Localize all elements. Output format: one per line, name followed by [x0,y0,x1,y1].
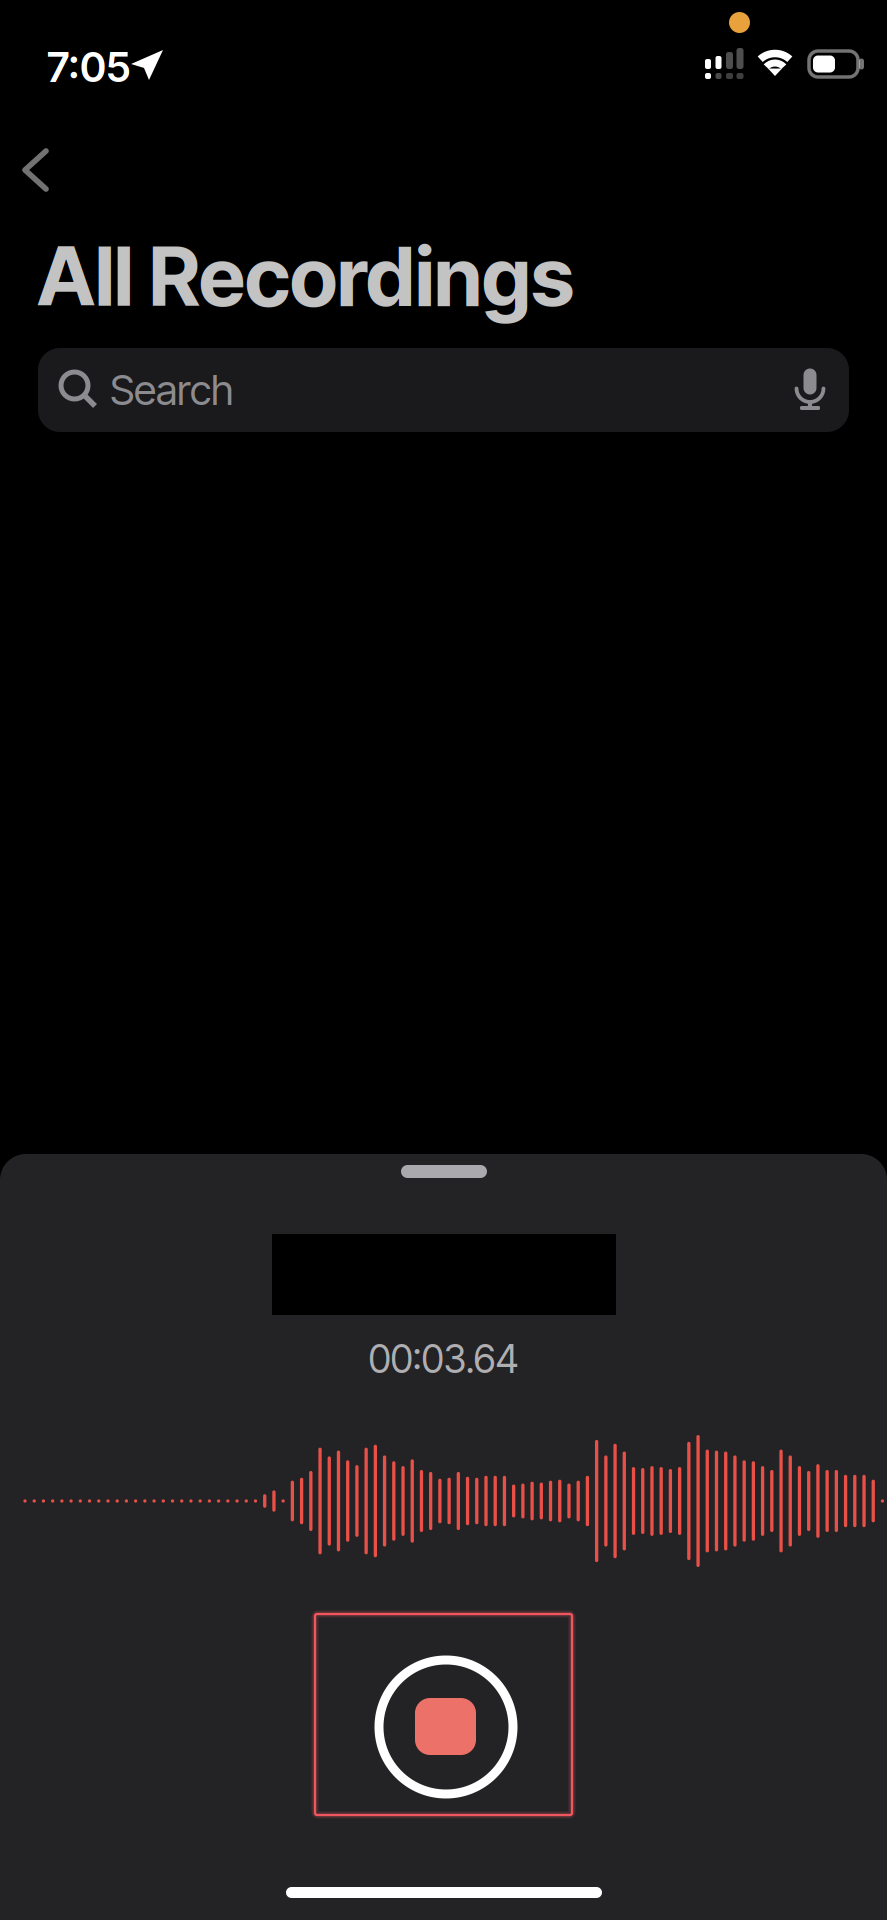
button[interactable]: Stop recording [315,1614,572,1815]
staticText: Search [110,365,234,415]
button[interactable]: Back [15,145,69,195]
staticText: All Recordings [37,227,574,325]
staticText: 7:05 [47,42,131,92]
button[interactable]: Search [38,348,849,432]
staticText: 00:03.64 [368,1336,518,1382]
